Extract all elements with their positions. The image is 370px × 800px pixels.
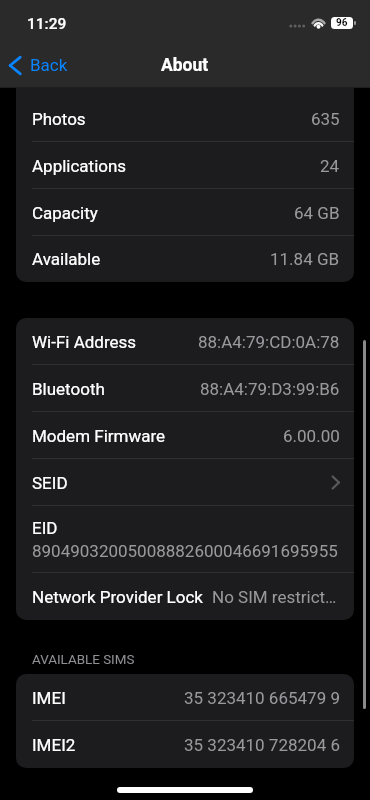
other: Open details	[331, 475, 340, 490]
button[interactable]: Network Provider Lock	[16, 573, 354, 620]
button[interactable]: IMEI2	[16, 721, 354, 768]
staticText: 88:A4:79:CD:0A:78	[198, 332, 340, 352]
staticText: Back	[30, 55, 68, 75]
button[interactable]: Wi-Fi Address	[16, 318, 354, 365]
staticText: SEID	[32, 473, 68, 493]
button[interactable]: IMEI	[16, 674, 354, 721]
staticText: 24	[320, 156, 340, 176]
staticText: 64 GB	[294, 203, 340, 223]
staticText: 35 323410 728204 6	[184, 735, 340, 755]
staticText: IMEI2	[32, 735, 76, 755]
button[interactable]: Modem Firmware	[16, 412, 354, 459]
button[interactable]: Photos	[16, 95, 354, 142]
staticText: Bluetooth	[32, 379, 105, 399]
staticText: 6.00.00	[283, 426, 340, 446]
other: Cellular signal	[289, 24, 309, 28]
staticText: 89049032005008882600046691695955	[32, 541, 338, 561]
staticText: Available	[32, 249, 101, 269]
button[interactable]: SEID	[16, 459, 354, 506]
staticText: Network Provider Lock	[32, 587, 203, 607]
button[interactable]: Bluetooth	[16, 365, 354, 412]
staticText: EID	[32, 518, 58, 538]
button[interactable]: EID	[16, 506, 354, 573]
staticText: 635	[311, 109, 340, 129]
staticText: 11:29	[27, 15, 67, 33]
staticText: Wi-Fi Address	[32, 332, 137, 352]
staticText: 96	[336, 17, 348, 29]
staticText: Modem Firmware	[32, 426, 166, 446]
other: Battery 96 percent	[331, 17, 353, 29]
staticText: 88:A4:79:D3:99:B6	[200, 379, 340, 399]
other: Wi-Fi	[311, 17, 326, 29]
staticText: Capacity	[32, 203, 98, 223]
button[interactable]: Back	[0, 43, 76, 87]
staticText: 35 323410 665479 9	[184, 688, 340, 708]
button[interactable]: Applications	[16, 142, 354, 189]
staticText: Photos	[32, 109, 86, 129]
staticText: 11.84 GB	[270, 249, 340, 269]
staticText: Applications	[32, 156, 127, 176]
staticText: About	[161, 55, 209, 76]
staticText: IMEI	[32, 688, 66, 708]
staticText: AVAILABLE SIMS	[32, 652, 135, 668]
staticText: No SIM restrictions	[212, 587, 340, 607]
button[interactable]: Capacity	[16, 189, 354, 236]
button[interactable]: Available	[16, 236, 354, 282]
